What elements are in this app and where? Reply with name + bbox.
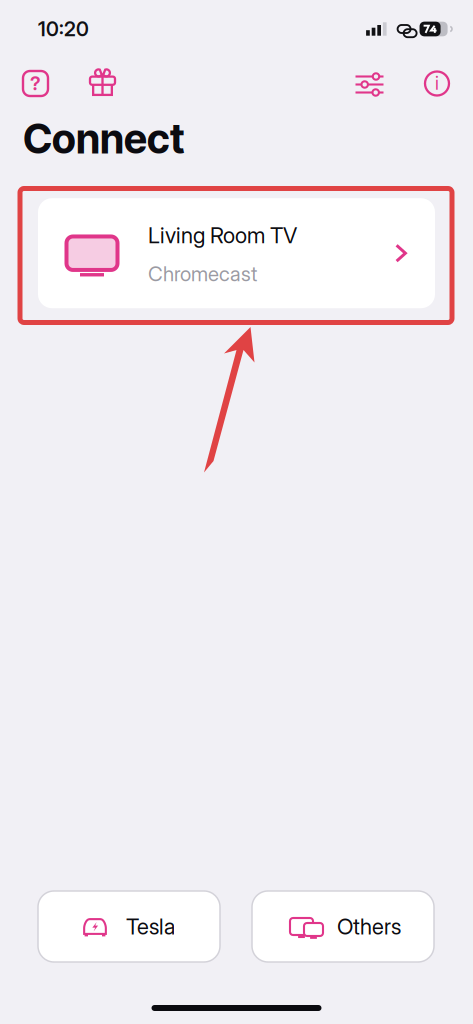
button[interactable]: Information bbox=[420, 60, 460, 104]
staticText: 10:20 bbox=[38, 17, 89, 41]
button[interactable]: Living Room TV bbox=[38, 198, 435, 308]
staticText: ? bbox=[30, 72, 41, 95]
staticText: Tesla bbox=[126, 913, 175, 940]
staticText: Living Room TV bbox=[148, 222, 297, 249]
staticText: i bbox=[435, 72, 439, 94]
button[interactable]: Tesla bbox=[38, 891, 220, 962]
button[interactable]: Settings bbox=[349, 60, 394, 104]
button[interactable]: Rewards bbox=[81, 60, 120, 104]
staticText: Connect bbox=[23, 114, 184, 163]
button[interactable]: Help bbox=[15, 60, 56, 104]
staticText: Others bbox=[337, 913, 401, 940]
button[interactable]: Others bbox=[252, 891, 434, 962]
staticText: Chromecast bbox=[148, 262, 257, 286]
